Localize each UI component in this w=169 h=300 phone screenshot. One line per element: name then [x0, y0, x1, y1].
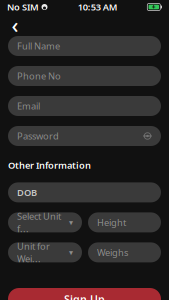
staticText: Other Information	[8, 159, 91, 171]
button[interactable]: Full Name	[8, 36, 161, 56]
staticText: ▾	[69, 248, 73, 257]
staticText: 10:53 AM	[78, 1, 118, 13]
button[interactable]: Select Unit f...	[8, 212, 82, 232]
staticText: Unit for Wei...	[17, 240, 50, 265]
button[interactable]: Height	[88, 212, 161, 232]
button[interactable]: Password	[8, 126, 161, 146]
staticText: No SIM	[7, 1, 39, 13]
button[interactable]: Sign Up	[8, 288, 161, 300]
button[interactable]: DOB	[8, 182, 161, 202]
staticText: DOB	[17, 186, 37, 199]
staticText: Full Name	[17, 40, 60, 52]
staticText: Weighs	[97, 246, 128, 259]
button[interactable]: Phone No	[8, 66, 161, 86]
staticText: +	[152, 3, 156, 11]
staticText: Sign Up	[64, 292, 105, 300]
staticText: ‹	[11, 11, 18, 39]
staticText: Select Unit f...	[17, 210, 61, 235]
staticText: Height	[97, 216, 126, 229]
button[interactable]: Back	[5, 16, 25, 34]
staticText: ▾	[69, 218, 73, 227]
staticText: Email	[17, 100, 40, 112]
staticText: Phone No	[17, 70, 61, 82]
button[interactable]: Unit for Wei...	[8, 242, 82, 262]
staticText: Password	[17, 130, 59, 142]
button[interactable]: Weighs	[88, 242, 161, 262]
button[interactable]: Email	[8, 96, 161, 116]
